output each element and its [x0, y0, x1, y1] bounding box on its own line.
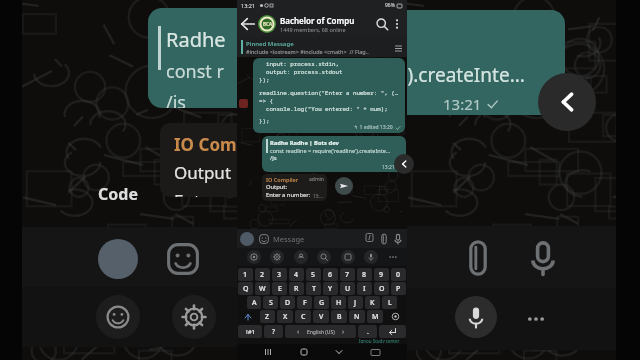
button[interactable]: Search: [374, 16, 390, 32]
staticText: ?: [272, 327, 275, 336]
button[interactable]: Z: [260, 310, 275, 323]
staticText: input: process.stdin,: [259, 60, 339, 68]
staticText: H: [336, 298, 342, 308]
staticText: 2: [260, 270, 265, 280]
button[interactable]: Scroll to bottom: [394, 154, 414, 174]
button[interactable]: Quick action 4: [341, 250, 355, 264]
staticText: !#1: [246, 328, 255, 336]
button[interactable]: Recents: [263, 347, 273, 357]
button[interactable]: B: [331, 310, 347, 323]
staticText: readline.question("Enter a number: ", (n…: [259, 89, 401, 97]
button[interactable]: !#1: [238, 325, 262, 338]
button[interactable]: 3: [272, 268, 287, 281]
button[interactable]: Hide keyboard: [334, 347, 344, 357]
button[interactable]: Pinned Message: [237, 37, 407, 57]
staticText: G: [319, 298, 325, 308]
staticText: admin: [309, 176, 324, 183]
button[interactable]: Send: [335, 177, 353, 195]
button[interactable]: G: [314, 296, 329, 309]
button[interactable]: Profile: [240, 232, 254, 246]
button[interactable]: 5: [306, 268, 321, 281]
button[interactable]: Quick action 1: [270, 250, 284, 264]
staticText: 8: [362, 270, 367, 280]
button[interactable]: Quick action 3: [317, 250, 331, 264]
button[interactable]: 6: [323, 268, 338, 281]
button[interactable]: Bachelor of Compu: [280, 15, 374, 33]
button[interactable]: Quick action 2: [294, 250, 308, 264]
button[interactable]: Emoji: [258, 233, 270, 245]
button[interactable]: 4: [289, 268, 304, 281]
button[interactable]: Quick action 0: [247, 250, 261, 264]
staticText: 3: [277, 270, 282, 280]
staticText: 4: [294, 270, 299, 280]
button[interactable]: More options: [390, 17, 404, 31]
staticText: 13:21: [313, 193, 324, 199]
staticText: 0: [396, 270, 401, 280]
staticText: A: [252, 298, 257, 308]
staticText: 96%: [385, 2, 395, 9]
button[interactable]: 0: [391, 268, 406, 281]
staticText: D: [285, 298, 291, 308]
button[interactable]: D: [280, 296, 295, 309]
button[interactable]: A: [247, 296, 261, 309]
button[interactable]: 7: [340, 268, 355, 281]
button[interactable]: X: [277, 310, 293, 323]
staticText: ‹: [297, 327, 300, 337]
button[interactable]: Shift: [238, 310, 258, 323]
button[interactable]: Home: [299, 347, 309, 357]
staticText: #include <iostream> #include <cmath> // …: [246, 48, 369, 55]
button[interactable]: Keyboard layout: [370, 347, 381, 358]
button[interactable]: K: [365, 296, 380, 309]
button[interactable]: Message: [273, 234, 365, 244]
button[interactable]: ‹: [285, 325, 356, 338]
button[interactable]: T: [306, 282, 321, 295]
staticText: 13:21: [443, 94, 482, 114]
button[interactable]: ?: [264, 325, 283, 338]
button[interactable]: Radhe Radhe | Bots dev: [262, 136, 406, 172]
button[interactable]: 8: [357, 268, 372, 281]
button[interactable]: Enter: [379, 325, 406, 338]
button[interactable]: Attach: [378, 233, 390, 245]
button[interactable]: O: [374, 282, 389, 295]
button[interactable]: L: [382, 296, 397, 309]
button[interactable]: C: [295, 310, 311, 323]
button[interactable]: Quick action 5: [364, 250, 378, 264]
button[interactable]: Y: [323, 282, 338, 295]
staticText: Output:: [266, 183, 287, 191]
button[interactable]: R: [289, 282, 304, 295]
staticText: I: [363, 284, 366, 294]
button[interactable]: N: [349, 310, 365, 323]
button[interactable]: IO Compiler: [262, 174, 327, 201]
button[interactable]: U: [340, 282, 355, 295]
staticText: /js: [270, 154, 277, 162]
button[interactable]: Group avatar: [258, 15, 276, 33]
button[interactable]: Q: [238, 282, 253, 295]
button[interactable]: 2: [255, 268, 270, 281]
button[interactable]: Formatting: [365, 233, 376, 244]
button[interactable]: More: [388, 252, 398, 262]
button[interactable]: Voice message: [392, 233, 404, 245]
button[interactable]: .: [358, 325, 377, 338]
button[interactable]: F: [297, 296, 312, 309]
staticText: B: [337, 312, 342, 322]
staticText: Radhe Radhe | Bots dev: [270, 139, 339, 147]
button[interactable]: H: [331, 296, 346, 309]
staticText: V: [319, 312, 324, 322]
button[interactable]: input: process.stdin,: [253, 58, 405, 133]
button[interactable]: J: [348, 296, 363, 309]
button[interactable]: S: [263, 296, 278, 309]
button[interactable]: V: [313, 310, 329, 323]
button[interactable]: M: [367, 310, 383, 323]
staticText: Pinned Message: [246, 40, 294, 48]
button[interactable]: 9: [374, 268, 389, 281]
button[interactable]: W: [255, 282, 270, 295]
staticText: ↰ 1 edited 13:20: [354, 124, 393, 131]
button[interactable]: I: [357, 282, 372, 295]
button[interactable]: 1: [238, 268, 253, 281]
button[interactable]: P: [391, 282, 406, 295]
button[interactable]: E: [272, 282, 287, 295]
button[interactable]: Back: [240, 16, 256, 32]
button[interactable]: Backspace: [385, 310, 406, 323]
staticText: 13:21: [382, 164, 395, 171]
staticText: 1: [243, 270, 248, 280]
